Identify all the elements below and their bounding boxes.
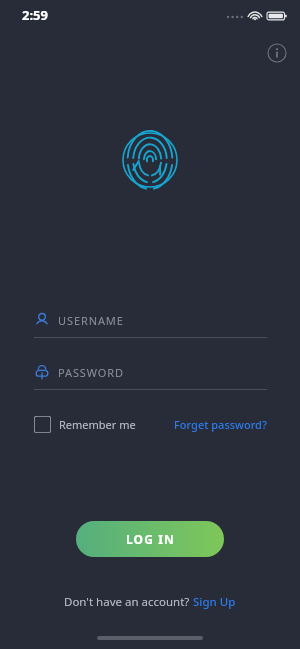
button[interactable]: PASSWORD	[34, 361, 267, 390]
button[interactable]: USERNAME	[34, 309, 267, 338]
staticText: LOG IN	[126, 531, 175, 547]
button[interactable]: Remember me	[34, 416, 136, 433]
staticText: PASSWORD	[58, 365, 124, 380]
staticText: 2:59	[22, 6, 48, 24]
button[interactable]: Information	[264, 40, 290, 66]
staticText: Don't have an account?	[64, 594, 193, 610]
button[interactable]: Sign Up	[193, 594, 236, 610]
staticText: Sign Up	[193, 594, 236, 610]
staticText: Remember me	[59, 417, 136, 432]
button[interactable]: LOG IN	[76, 521, 224, 557]
staticText: USERNAME	[58, 313, 124, 328]
button[interactable]: Forget password?	[174, 417, 267, 432]
staticText: Forget password?	[174, 417, 267, 432]
